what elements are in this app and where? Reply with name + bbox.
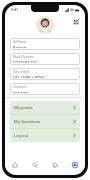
button[interactable]: Mobile Number xyxy=(10,53,80,65)
staticText: Full Name xyxy=(13,40,27,44)
button[interactable]: Log out xyxy=(10,129,80,142)
button[interactable]: Home xyxy=(5,158,25,172)
staticText: Password xyxy=(13,85,26,89)
staticText: My points xyxy=(14,105,73,110)
button[interactable]: My Questions xyxy=(10,115,80,128)
staticText: Date of Birth xyxy=(13,70,30,74)
staticText: 0771683770 xyxy=(13,60,37,63)
staticText: 9:41 xyxy=(11,7,19,12)
staticText: Mobile Number xyxy=(13,55,34,59)
button[interactable]: Edit profile xyxy=(72,17,80,25)
staticText: My Questions xyxy=(14,119,73,124)
staticText: Log out xyxy=(14,133,73,138)
button[interactable]: Profile xyxy=(65,158,85,172)
button[interactable]: Notifications xyxy=(45,158,65,172)
staticText: DD / MM / YYYY xyxy=(13,75,45,78)
button[interactable]: My points xyxy=(10,101,80,114)
button[interactable]: Full Name xyxy=(10,38,80,50)
button[interactable]: Password xyxy=(10,83,80,95)
staticText: •••••••••• xyxy=(13,90,29,93)
staticText: Rajesh xyxy=(13,45,27,48)
button[interactable]: Profile photo xyxy=(36,16,54,34)
button[interactable]: Date of Birth xyxy=(10,68,80,80)
button[interactable]: Search xyxy=(25,158,45,172)
